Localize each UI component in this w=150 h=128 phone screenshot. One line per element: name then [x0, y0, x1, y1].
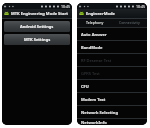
button[interactable]: CFU	[77, 80, 147, 92]
staticText: Auto Answer	[81, 32, 107, 37]
staticText: GPRS Test	[81, 71, 100, 76]
button[interactable]: RF Desense Test	[77, 54, 147, 66]
staticText: 10:45	[136, 4, 145, 9]
staticText: 10:45	[61, 4, 70, 9]
button[interactable]: BandMode	[77, 41, 147, 53]
staticText: NetworkInfo	[81, 120, 107, 125]
staticText: Telephony	[86, 20, 104, 25]
button[interactable]: Modem Test	[77, 93, 147, 105]
button[interactable]: Auto Answer	[77, 28, 147, 40]
staticText: Network Selecting	[81, 110, 118, 115]
button[interactable]: NetworkInfo	[77, 119, 147, 125]
staticText: CFU	[81, 84, 89, 89]
staticText: MTK Engineering Mode Start	[11, 11, 68, 16]
staticText: Connectivity	[119, 20, 140, 25]
button[interactable]: Connectivity	[112, 19, 147, 27]
staticText: RF Desense Test	[81, 58, 112, 63]
button[interactable]: MTK Settings	[4, 34, 70, 45]
button[interactable]: Telephony	[77, 19, 112, 27]
staticText: Android Settings	[20, 24, 54, 29]
button[interactable]: Android Settings	[4, 21, 70, 32]
button[interactable]: GPRS Test	[77, 67, 147, 79]
staticText: BandMode	[81, 45, 103, 50]
staticText: MTK Settings	[24, 37, 51, 42]
staticText: Modem Test	[81, 97, 106, 102]
button[interactable]: Network Selecting	[77, 106, 147, 118]
staticText: EngineerMode	[86, 11, 115, 16]
